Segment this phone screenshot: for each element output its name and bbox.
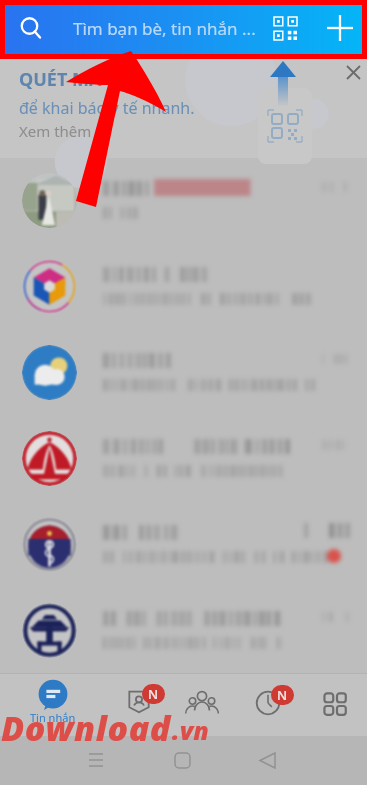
button[interactable]: Home (160, 738, 204, 782)
staticText: để khai báo y tế nhanh. (19, 97, 195, 119)
button[interactable]: Recents (74, 738, 118, 782)
button[interactable]: Back (245, 738, 289, 782)
staticText: Download (1, 705, 172, 751)
staticText: Tin nhắn (30, 710, 76, 725)
button[interactable]: Messages (23, 673, 83, 731)
button[interactable]: Contacts (109, 680, 169, 738)
button[interactable] (0, 330, 367, 416)
button[interactable] (0, 244, 367, 330)
button[interactable]: Discover (238, 681, 298, 739)
button[interactable]: More (305, 682, 365, 740)
button[interactable]: Scan QR code (257, 0, 313, 56)
button[interactable] (0, 502, 367, 588)
button[interactable] (0, 588, 367, 674)
button[interactable]: Close banner (336, 55, 367, 89)
staticText: .vn (172, 713, 209, 747)
staticText: N (277, 686, 288, 704)
button[interactable] (0, 158, 367, 244)
staticText: Xem thêm (19, 121, 92, 141)
button[interactable] (0, 416, 367, 502)
staticText: QUÉT MÃ QR (19, 67, 133, 92)
button[interactable]: Groups (172, 680, 232, 738)
staticText: N (148, 685, 159, 703)
button[interactable]: Add (313, 0, 367, 56)
button[interactable]: Search (0, 0, 62, 56)
staticText: Tìm bạn bè, tin nhắn ... (73, 17, 256, 40)
